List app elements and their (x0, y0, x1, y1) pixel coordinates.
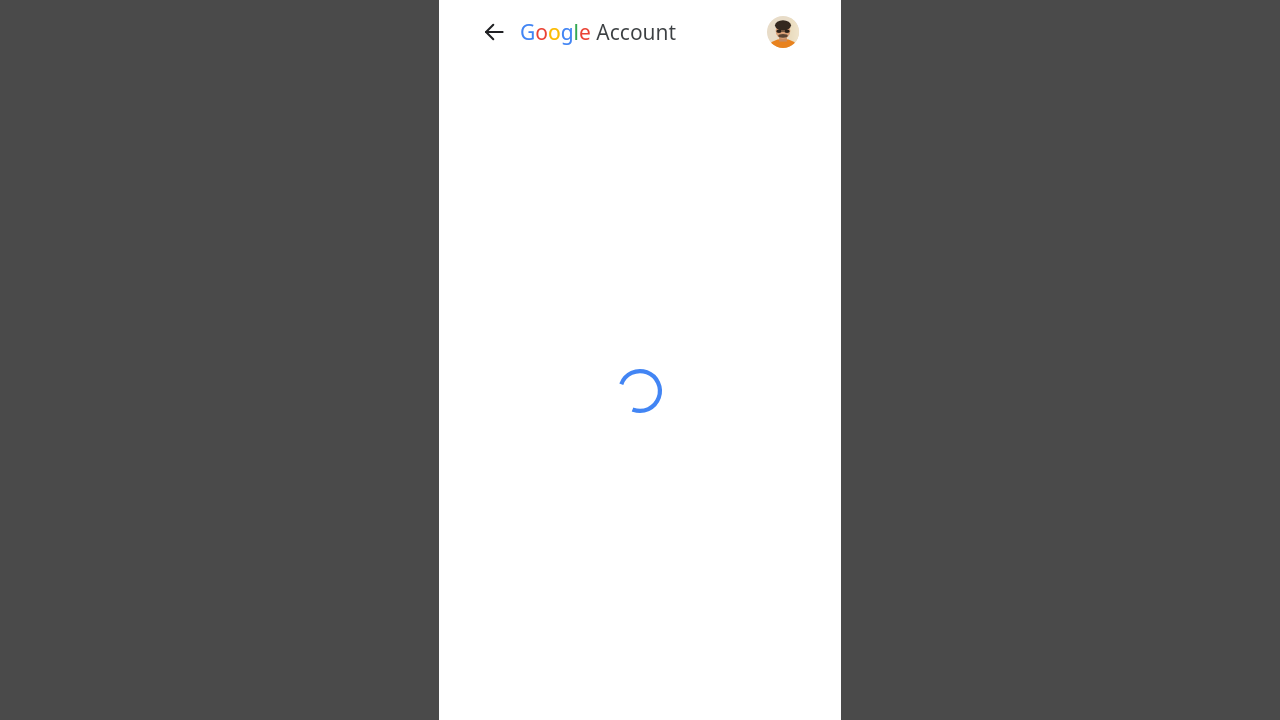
staticText: Google Account (520, 18, 677, 47)
button[interactable]: Account profile photo (759, 8, 807, 56)
button[interactable]: Google Account (520, 8, 677, 56)
button[interactable]: Back (470, 8, 518, 56)
